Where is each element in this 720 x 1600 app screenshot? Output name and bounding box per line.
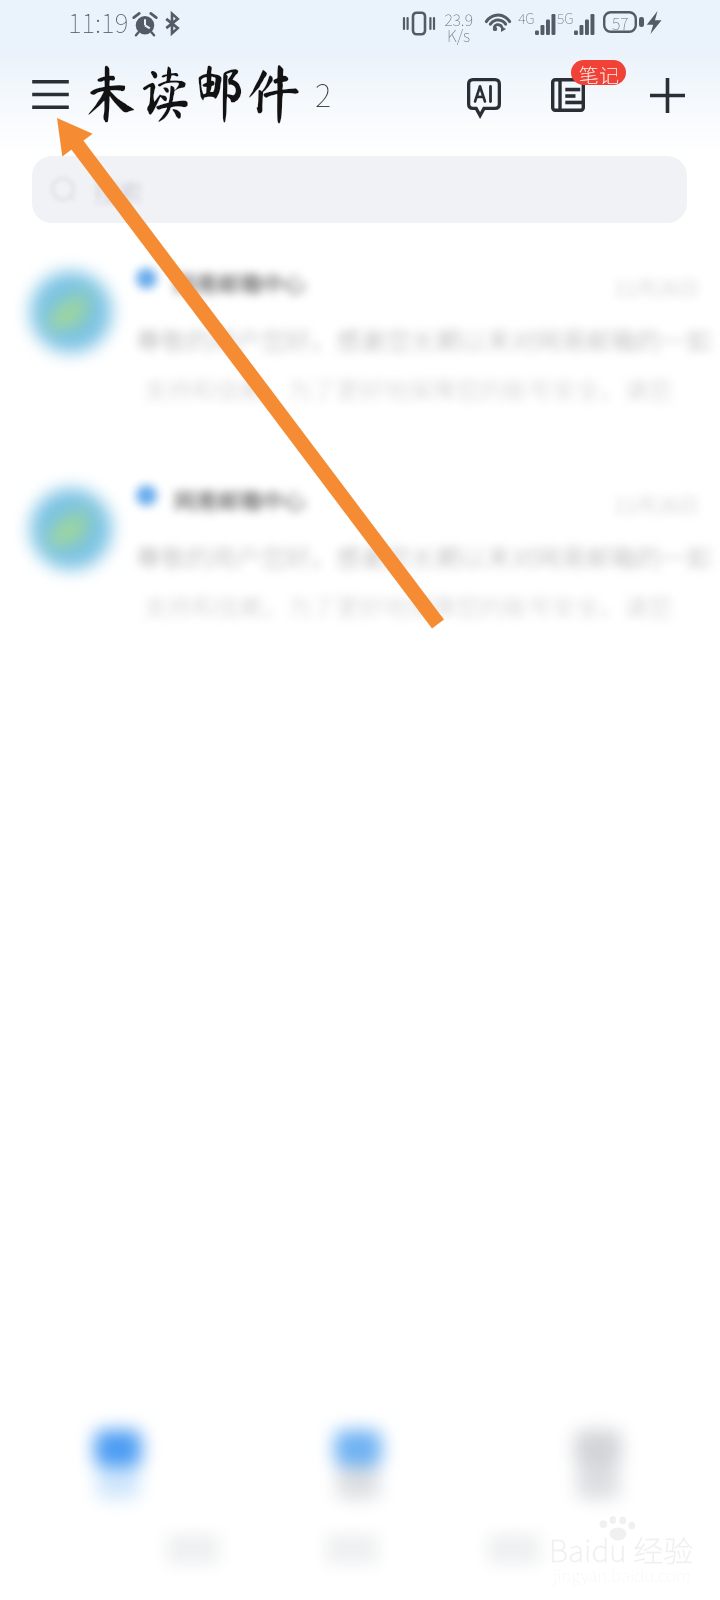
staticText: 11月26日 [614, 489, 700, 519]
button[interactable]: AI assistant [454, 65, 514, 125]
staticText: 5G [557, 8, 574, 28]
staticText: 笔记 [579, 60, 619, 85]
staticText: 搜索 [93, 173, 144, 209]
staticText: 尊敬的用户您好，感谢您长期以来对网易邮箱的一如 [136, 321, 712, 357]
staticText: 57 [612, 11, 629, 33]
button[interactable]: 网易邮箱中心 [0, 470, 720, 686]
staticText: Baidu 经验 [549, 1527, 694, 1570]
staticText: 11:19 [68, 3, 129, 41]
button[interactable]: Tab [298, 1408, 418, 1528]
staticText: 未读邮件 [84, 61, 302, 123]
staticText: 23.9 K/s [444, 7, 473, 46]
staticText: 网易邮箱中心 [174, 483, 307, 515]
button[interactable]: Tab [58, 1408, 178, 1528]
staticText: 支持和信赖，为了更好地保障您的账号安全，请您 [144, 588, 672, 623]
staticText: 11月26日 [614, 272, 700, 302]
button[interactable]: Notes [538, 65, 598, 125]
staticText: 尊敬的用户您好，感谢您长期以来对网易邮箱的一如 [136, 538, 712, 574]
staticText: 2 [315, 71, 332, 116]
staticText: 支持和信赖，为了更好地保障您的账号安全，请您 [144, 371, 672, 406]
button[interactable]: Tab [538, 1408, 658, 1528]
button[interactable]: Menu [20, 65, 80, 125]
button[interactable]: Compose new mail [637, 65, 697, 125]
button[interactable]: 网易邮箱中心 [0, 253, 720, 469]
button[interactable]: Search [32, 156, 687, 223]
staticText: 4G [518, 8, 535, 28]
staticText: 网易邮箱中心 [174, 266, 307, 298]
